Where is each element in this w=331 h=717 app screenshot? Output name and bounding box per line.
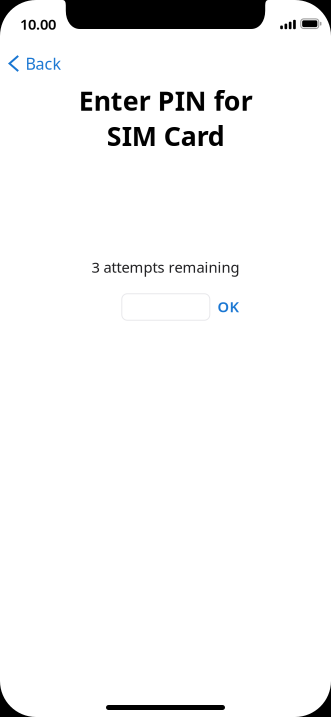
button[interactable]: Back (0, 45, 73, 81)
staticText: 3 attempts remaining (91, 257, 239, 277)
staticText: Enter PIN for SIM Card (78, 83, 252, 153)
staticText: OK (217, 297, 238, 316)
button[interactable]: OK (211, 291, 244, 322)
staticText: 10.00 (20, 14, 56, 34)
staticText: Back (25, 53, 61, 74)
